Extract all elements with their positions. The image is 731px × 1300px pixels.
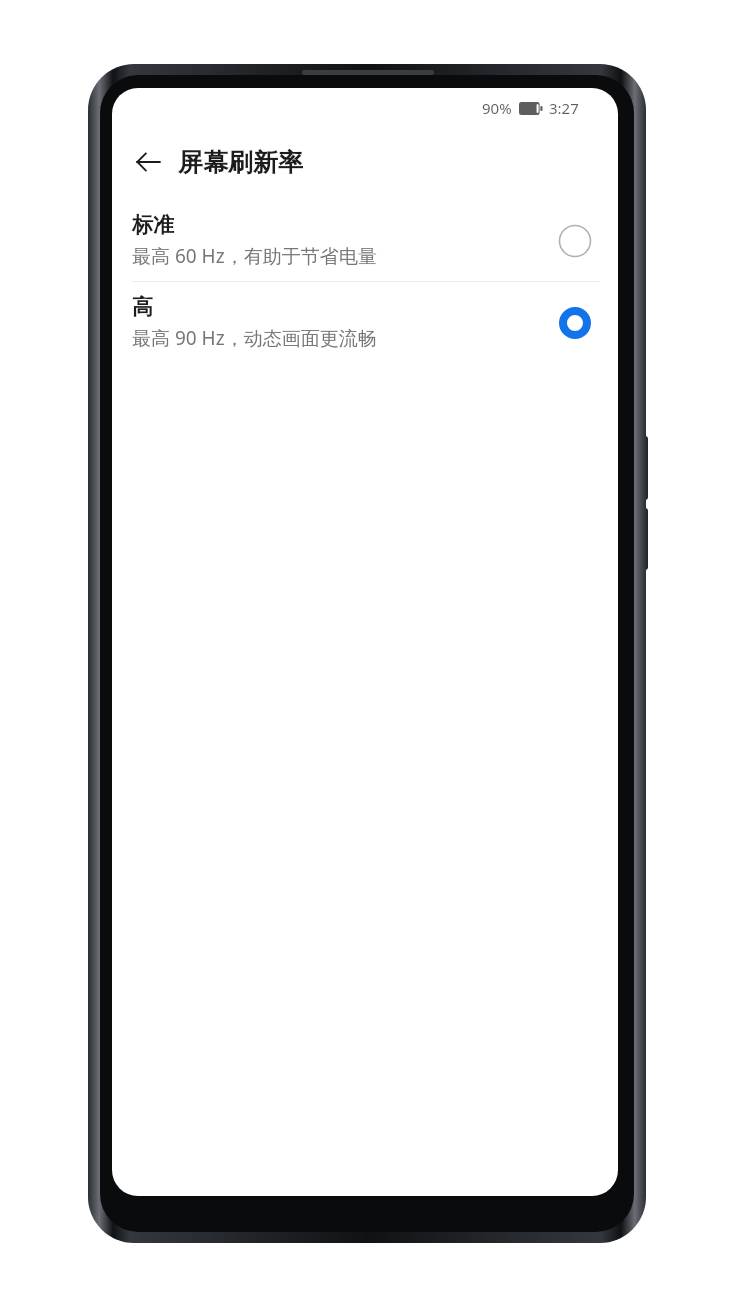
staticText: 90% [482,98,512,118]
staticText: 高 [132,294,153,320]
button[interactable]: Back [126,140,170,184]
staticText: 标准 [132,212,174,238]
staticText: 最高 90 Hz，动态画面更流畅 [132,325,377,351]
button[interactable]: 标准 [112,200,618,281]
staticText: 3:27 [549,98,579,118]
staticText: 最高 60 Hz，有助于节省电量 [132,243,377,269]
other: Selected [558,306,592,340]
button[interactable]: 高 [112,282,618,363]
other: Not selected [558,224,592,258]
staticText: 屏幕刷新率 [178,147,303,178]
